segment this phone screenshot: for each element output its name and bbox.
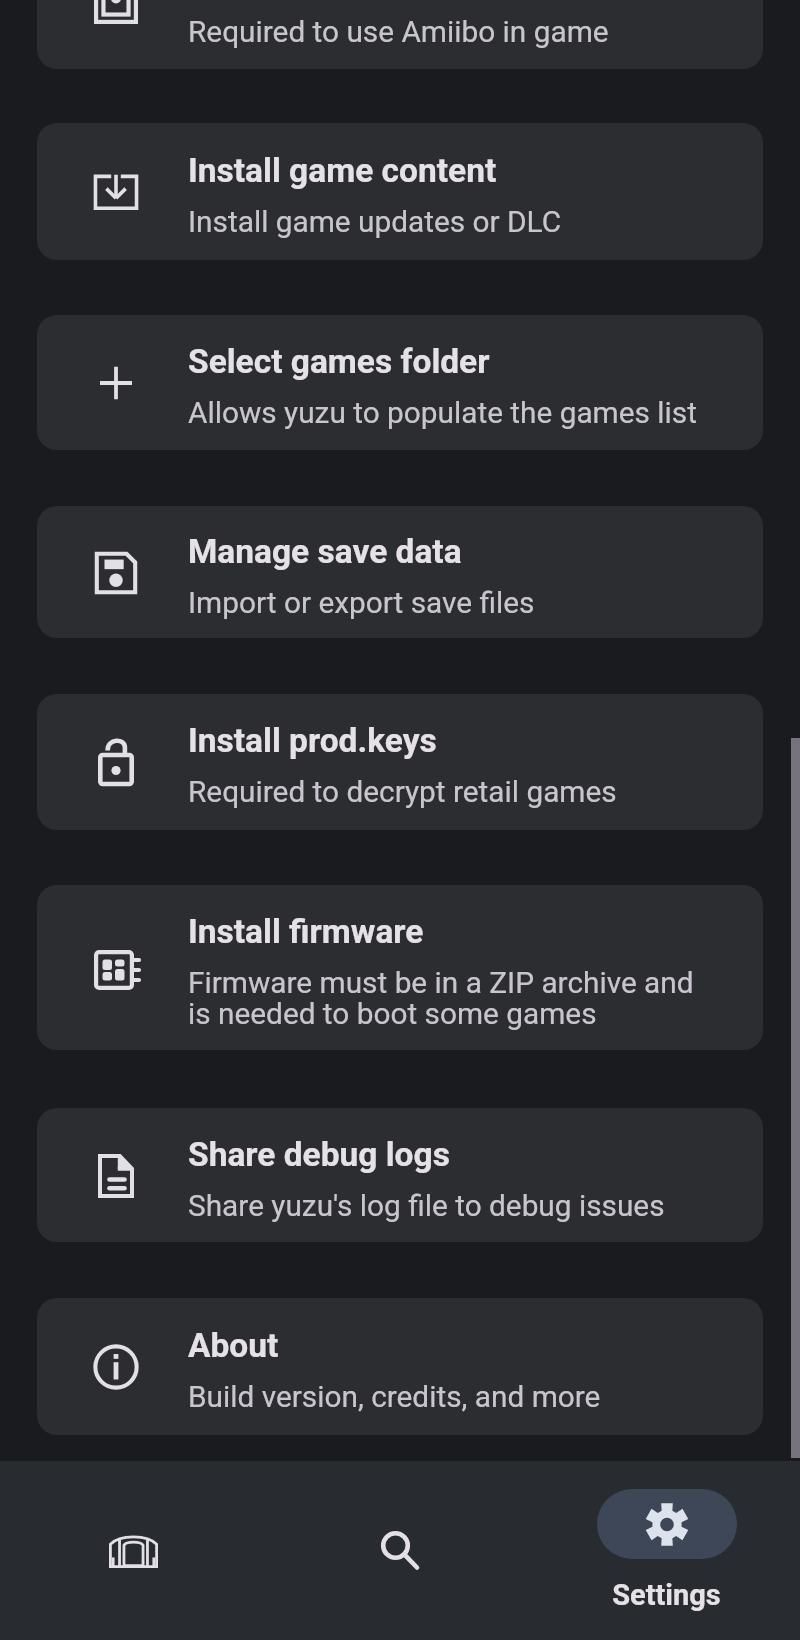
button[interactable]: Settings [533,1461,800,1640]
button[interactable]: Search [267,1461,533,1640]
button[interactable]: Install prod.keys [37,694,763,830]
staticText: Allows yuzu to populate the games list [188,395,703,430]
staticText: Required to decrypt retail games [188,774,703,809]
button[interactable]: Games [0,1461,267,1640]
button[interactable]: Share debug logs [37,1108,763,1242]
button[interactable]: Manage save data [37,506,763,638]
button[interactable]: Select games folder [37,315,763,450]
staticText: Required to use Amiibo in game [188,14,703,49]
staticText: Manage save data [188,532,462,571]
staticText: Install game content [188,151,497,190]
staticText: Firmware must be in a ZIP archive and is… [188,965,703,1032]
staticText: Settings [533,1578,800,1612]
staticText: About [188,1326,279,1365]
staticText: Install game updates or DLC [188,204,703,239]
staticText: Share debug logs [188,1135,450,1174]
staticText: Select games folder [188,342,490,381]
staticText: Build version, credits, and more [188,1379,703,1414]
staticText: Import or export save files [188,585,703,620]
button[interactable]: Install game content [37,123,763,260]
button[interactable]: Manage Amiibo [37,0,763,69]
button[interactable]: Install firmware [37,885,763,1050]
button[interactable]: About [37,1298,763,1435]
staticText: Install prod.keys [188,721,437,760]
staticText: Share yuzu's log file to debug issues [188,1188,703,1223]
staticText: Install firmware [188,912,424,951]
